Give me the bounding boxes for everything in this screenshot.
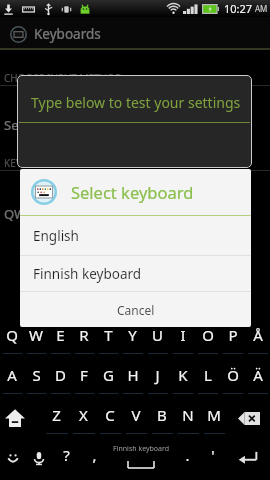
staticText: 10:27 xyxy=(224,1,253,16)
staticText: AM xyxy=(255,3,268,14)
button[interactable]: M xyxy=(201,398,227,438)
staticText: X xyxy=(79,405,88,425)
button[interactable]: Enter xyxy=(226,438,270,478)
button[interactable]: T xyxy=(96,318,120,358)
button[interactable]: Ö xyxy=(220,358,245,398)
button[interactable]: QWERTY layout xyxy=(0,171,270,225)
button[interactable]: A xyxy=(0,358,24,398)
staticText: CHOOSE INPUT METHOD xyxy=(4,71,123,85)
staticText: Å xyxy=(253,325,263,345)
button[interactable]: K xyxy=(170,358,195,398)
button[interactable]: D xyxy=(48,358,72,398)
button[interactable]: H xyxy=(120,358,145,398)
button[interactable]: Y xyxy=(120,318,145,358)
staticText: K xyxy=(178,365,188,385)
staticText: KEYBOARD SETTINGS xyxy=(4,156,105,170)
staticText: O xyxy=(202,325,214,345)
button[interactable]: Cancel xyxy=(20,292,251,327)
button[interactable]: Finnish keyboard xyxy=(108,438,174,478)
button[interactable]: W xyxy=(24,318,48,358)
staticText: Y xyxy=(128,325,137,345)
button[interactable]: F xyxy=(72,358,96,398)
button[interactable]: X xyxy=(70,398,97,438)
button[interactable]: . xyxy=(174,438,200,478)
staticText: T xyxy=(104,325,113,345)
staticText: J xyxy=(155,365,160,385)
staticText: I xyxy=(180,325,186,345)
button[interactable]: Finnish keyboard xyxy=(20,256,251,291)
button[interactable]: , xyxy=(80,438,108,478)
staticText: ? xyxy=(63,445,70,465)
staticText: . xyxy=(185,445,190,465)
staticText: Q xyxy=(6,325,18,345)
button[interactable]: U xyxy=(145,318,170,358)
staticText: R xyxy=(79,325,89,345)
staticText: M xyxy=(207,405,221,425)
button[interactable]: I xyxy=(170,318,195,358)
button[interactable]: Z xyxy=(43,398,70,438)
staticText: , xyxy=(92,445,97,465)
button[interactable]: B xyxy=(149,398,175,438)
staticText: Select keyboard xyxy=(71,181,194,203)
staticText: H xyxy=(127,365,139,385)
button[interactable]: O xyxy=(195,318,220,358)
staticText: F xyxy=(80,365,88,385)
button[interactable]: V xyxy=(123,398,149,438)
staticText: Select keyboard xyxy=(4,116,101,134)
staticText: QWERTY layout xyxy=(4,205,98,223)
staticText: W xyxy=(29,325,43,345)
staticText: V xyxy=(131,405,141,425)
button[interactable]: E xyxy=(48,318,72,358)
button[interactable]: C xyxy=(97,398,123,438)
staticText: U xyxy=(152,325,163,345)
button[interactable]: Select keyboard xyxy=(0,86,270,140)
staticText: C xyxy=(105,405,115,425)
staticText: Ä xyxy=(253,365,263,385)
staticText: B xyxy=(157,405,167,425)
button[interactable]: ? xyxy=(52,438,80,478)
button[interactable]: ' xyxy=(200,438,226,478)
staticText: Cancel xyxy=(117,302,155,318)
button[interactable]: Emoji xyxy=(0,438,26,478)
staticText: Z xyxy=(52,405,61,425)
button[interactable]: J xyxy=(145,358,170,398)
staticText: Ö xyxy=(227,365,239,385)
button[interactable]: P xyxy=(220,318,245,358)
button[interactable]: Q xyxy=(0,318,24,358)
button[interactable]: L xyxy=(195,358,220,398)
staticText: G xyxy=(103,365,114,385)
button[interactable]: Ä xyxy=(245,358,270,398)
staticText: P xyxy=(228,325,238,345)
staticText: Keyboards xyxy=(34,25,101,43)
staticText: Type below to test your settings xyxy=(31,93,241,112)
staticText: E xyxy=(56,325,65,345)
button[interactable]: Voice input xyxy=(26,438,52,478)
staticText: Finnish keyboard xyxy=(113,444,170,454)
button[interactable]: Shift xyxy=(0,398,30,438)
staticText: ' xyxy=(211,445,215,465)
button[interactable]: G xyxy=(96,358,120,398)
button[interactable]: R xyxy=(72,318,96,358)
staticText: D xyxy=(55,365,66,385)
staticText: L xyxy=(204,365,212,385)
staticText: N xyxy=(182,405,194,425)
button[interactable]: S xyxy=(24,358,48,398)
button[interactable]: Delete xyxy=(227,398,270,438)
button[interactable]: English xyxy=(20,216,251,255)
button[interactable]: Å xyxy=(245,318,270,358)
staticText: English xyxy=(33,227,79,245)
staticText: A xyxy=(7,365,17,385)
staticText: S xyxy=(32,365,41,385)
staticText: Finnish keyboard xyxy=(33,265,142,283)
button[interactable]: N xyxy=(175,398,201,438)
